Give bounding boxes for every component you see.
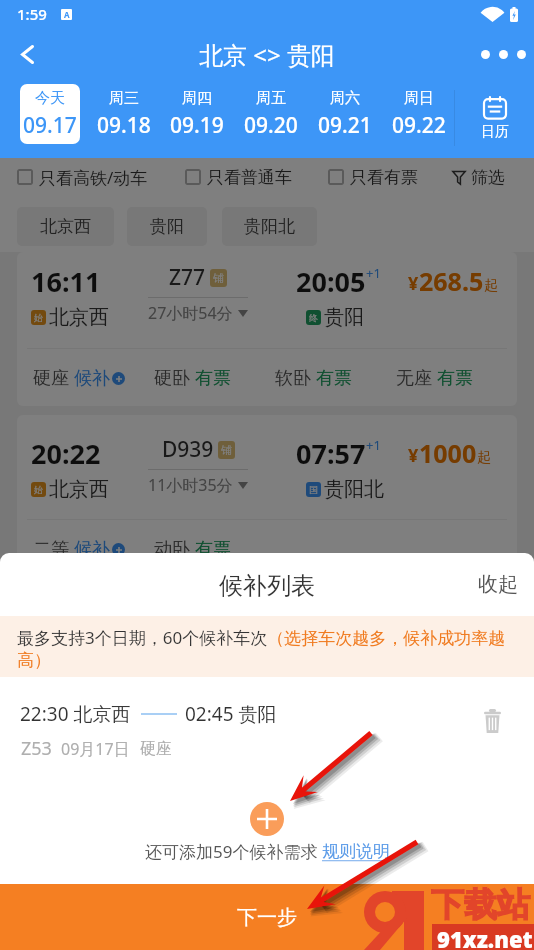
staticText: 候补 bbox=[74, 538, 110, 561]
button[interactable]: 周五 bbox=[235, 84, 307, 144]
staticText: 硬卧 bbox=[154, 367, 190, 390]
staticText: 软卧 bbox=[275, 367, 311, 390]
staticText: 下一步 bbox=[237, 905, 297, 930]
staticText: +1 bbox=[366, 436, 381, 454]
staticText: 周六 bbox=[330, 89, 360, 108]
staticText: 09.20 bbox=[244, 111, 298, 140]
button[interactable]: 规则说明 bbox=[322, 841, 390, 862]
staticText: ¥ bbox=[408, 443, 419, 468]
staticText: Z77 bbox=[169, 263, 206, 292]
button[interactable]: 只看高铁/动车 bbox=[17, 158, 148, 196]
staticText: 09.22 bbox=[392, 111, 446, 140]
staticText: 09.19 bbox=[170, 111, 224, 140]
staticText: 周三 bbox=[109, 89, 139, 108]
staticText: 1000 bbox=[419, 436, 477, 470]
staticText: 09月17日 bbox=[61, 738, 130, 760]
staticText: 北京西 bbox=[49, 305, 109, 330]
staticText: 02:45 贵阳 bbox=[185, 701, 277, 727]
staticText: D939 bbox=[162, 435, 214, 464]
button[interactable]: 日历 bbox=[455, 80, 534, 158]
button[interactable]: More options bbox=[472, 28, 534, 80]
button[interactable]: 下一步 bbox=[0, 884, 534, 950]
staticText: 只看普通车 bbox=[207, 167, 292, 188]
button[interactable]: 今天 bbox=[20, 84, 80, 144]
staticText: 有票 bbox=[316, 367, 352, 390]
staticText: 收起 bbox=[478, 572, 518, 597]
button[interactable]: 20:22 bbox=[17, 415, 517, 569]
staticText: 有票 bbox=[195, 538, 231, 561]
button[interactable]: Back bbox=[0, 28, 54, 80]
button[interactable]: 周四 bbox=[161, 84, 233, 144]
staticText: 二等 bbox=[33, 538, 69, 561]
staticText: 候补 bbox=[74, 367, 110, 390]
staticText: 贵阳北 bbox=[244, 216, 295, 237]
staticText: 北京西 bbox=[40, 216, 91, 237]
button[interactable]: Add candidate bbox=[250, 802, 284, 836]
staticText: 周日 bbox=[404, 89, 434, 108]
staticText: 20:05 bbox=[296, 263, 366, 300]
staticText: 贵阳 bbox=[150, 216, 184, 237]
staticText: 起 bbox=[477, 449, 491, 467]
staticText: 始 bbox=[34, 312, 43, 323]
staticText: 有票 bbox=[195, 367, 231, 390]
staticText: 终 bbox=[309, 312, 318, 323]
staticText: 最多支持3个日期，60个候补车次（选择车次越多，候补成功率越高） bbox=[17, 626, 515, 671]
staticText: 1:59 bbox=[17, 4, 47, 24]
staticText: 无座 bbox=[396, 367, 432, 390]
staticText: 有票 bbox=[437, 367, 473, 390]
button[interactable]: 只看有票 bbox=[328, 158, 418, 196]
staticText: 起 bbox=[484, 277, 498, 295]
staticText: 贵阳 bbox=[324, 305, 364, 330]
staticText: 09.18 bbox=[97, 111, 151, 140]
button[interactable]: 周六 bbox=[309, 84, 381, 144]
button[interactable]: 16:11 bbox=[17, 252, 517, 406]
staticText: 筛选 bbox=[471, 167, 505, 188]
staticText: 20:22 bbox=[31, 435, 101, 472]
staticText: 只看高铁/动车 bbox=[39, 166, 148, 189]
staticText: 国 bbox=[309, 484, 318, 495]
staticText: 今天 bbox=[35, 89, 65, 108]
staticText: 周五 bbox=[256, 89, 286, 108]
staticText: 铺 bbox=[221, 443, 232, 457]
button[interactable]: 贵阳 bbox=[127, 207, 207, 246]
staticText: 日历 bbox=[481, 123, 509, 141]
button[interactable]: 北京西 bbox=[17, 207, 114, 246]
staticText: 北京西 bbox=[49, 477, 109, 502]
staticText: 下载站 bbox=[431, 884, 530, 926]
staticText: 硬座 bbox=[140, 739, 172, 759]
staticText: 07:57 bbox=[296, 435, 366, 472]
staticText: ¥ bbox=[408, 271, 419, 296]
staticText: 周四 bbox=[182, 89, 212, 108]
staticText: 09.17 bbox=[23, 111, 77, 140]
staticText: 铺 bbox=[213, 271, 224, 285]
staticText: 硬座 bbox=[33, 367, 69, 390]
staticText: +1 bbox=[366, 264, 381, 282]
staticText: Z53 bbox=[21, 736, 52, 761]
button[interactable]: 贵阳北 bbox=[222, 207, 317, 246]
button[interactable]: 周日 bbox=[383, 84, 455, 144]
staticText: 贵阳北 bbox=[324, 477, 384, 502]
button[interactable]: 只看普通车 bbox=[185, 158, 292, 196]
staticText: 还可添加59个候补需求 bbox=[145, 840, 322, 863]
button[interactable]: 收起 bbox=[458, 555, 534, 613]
staticText: 09.21 bbox=[318, 111, 372, 140]
button[interactable]: 22:30 北京西 bbox=[0, 690, 534, 775]
staticText: 27小时54分 bbox=[148, 302, 233, 324]
staticText: 268.5 bbox=[419, 264, 484, 298]
staticText: 16:11 bbox=[31, 263, 101, 300]
staticText: A bbox=[64, 9, 70, 20]
button[interactable]: 筛选 bbox=[452, 158, 505, 196]
staticText: 11小时35分 bbox=[148, 474, 233, 496]
staticText: 22:30 北京西 bbox=[20, 701, 131, 727]
staticText: 始 bbox=[34, 484, 43, 495]
staticText: 北京 <> 贵阳 bbox=[199, 38, 335, 71]
staticText: 候补列表 bbox=[219, 571, 315, 601]
staticText: 91xz.net bbox=[437, 924, 533, 950]
button[interactable]: 周三 bbox=[88, 84, 160, 144]
staticText: 只看有票 bbox=[350, 167, 418, 188]
staticText: 动卧 bbox=[154, 538, 190, 561]
button[interactable]: Delete bbox=[460, 699, 524, 743]
